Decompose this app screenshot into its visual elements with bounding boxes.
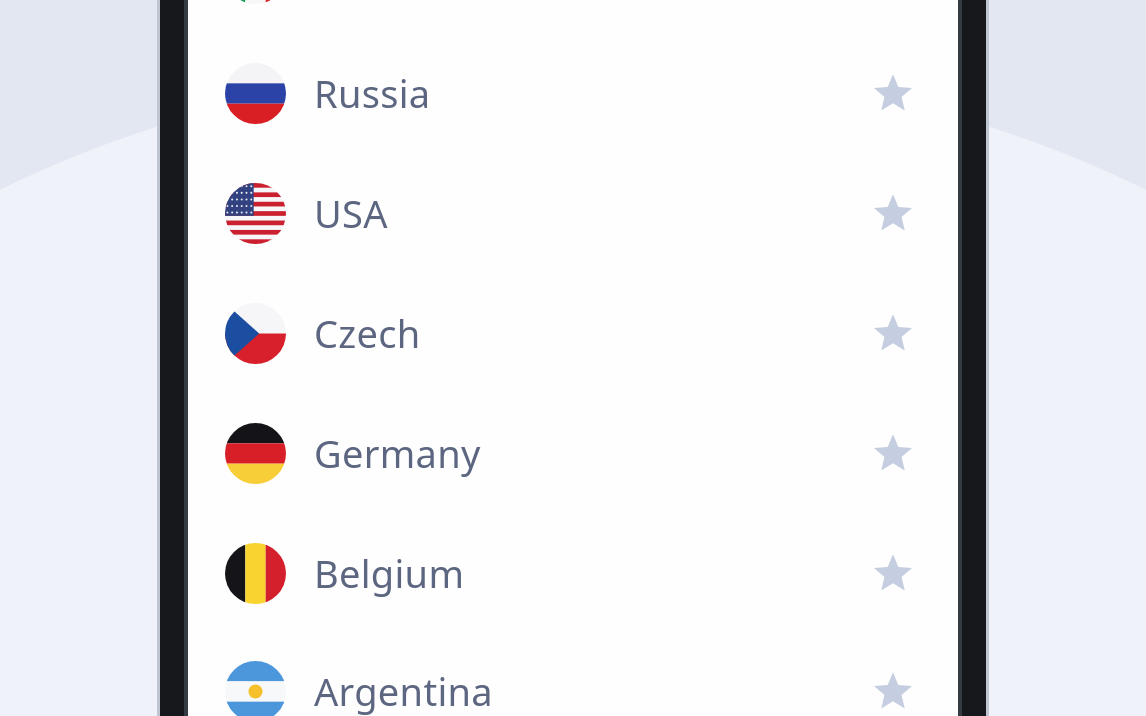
button[interactable]: Favourite USA xyxy=(854,174,932,252)
button[interactable]: Czech xyxy=(188,273,958,393)
button[interactable]: Argentina xyxy=(188,633,958,716)
button[interactable]: Italy xyxy=(188,0,958,33)
staticText: Belgium xyxy=(314,547,465,599)
button[interactable]: Favourite Russia xyxy=(854,54,932,132)
button[interactable]: USA xyxy=(188,153,958,273)
button[interactable]: Favourite Germany xyxy=(854,414,932,492)
staticText: Germany xyxy=(314,427,481,479)
staticText: Russia xyxy=(314,67,431,119)
button[interactable]: Favourite Czech xyxy=(854,294,932,372)
button[interactable]: Germany xyxy=(188,393,958,513)
staticText: USA xyxy=(314,187,388,239)
button[interactable]: Russia xyxy=(188,33,958,153)
button[interactable]: Favourite Argentina xyxy=(854,652,932,716)
button[interactable]: Belgium xyxy=(188,513,958,633)
staticText: Argentina xyxy=(314,665,493,716)
button[interactable]: Favourite Belgium xyxy=(854,534,932,612)
staticText: Czech xyxy=(314,307,421,359)
